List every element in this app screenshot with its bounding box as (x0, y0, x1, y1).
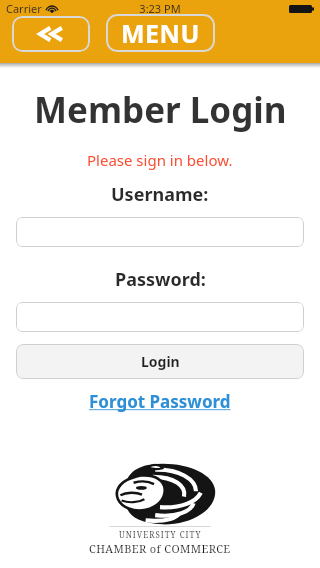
button[interactable]: Text field (16, 217, 304, 247)
staticText: Carrier (6, 1, 42, 16)
staticText: UNIVERSITY CITY (119, 529, 202, 540)
staticText: Member Login (34, 86, 287, 134)
staticText: Login (141, 352, 180, 371)
staticText: Forgot Password (89, 390, 231, 413)
staticText: CHAMBER of COMMERCE (89, 541, 231, 556)
button[interactable]: Text field (16, 302, 304, 332)
staticText: Username: (111, 182, 209, 207)
staticText: 3:23 PM (0, 1, 320, 16)
button[interactable]: MENU (106, 14, 215, 52)
button[interactable]: Back (12, 16, 90, 52)
staticText: MENU (121, 16, 200, 50)
button[interactable]: Login (16, 344, 304, 379)
staticText: Please sign in below. (87, 150, 233, 170)
staticText: Password: (115, 267, 206, 292)
button[interactable]: Forgot Password (83, 388, 237, 415)
